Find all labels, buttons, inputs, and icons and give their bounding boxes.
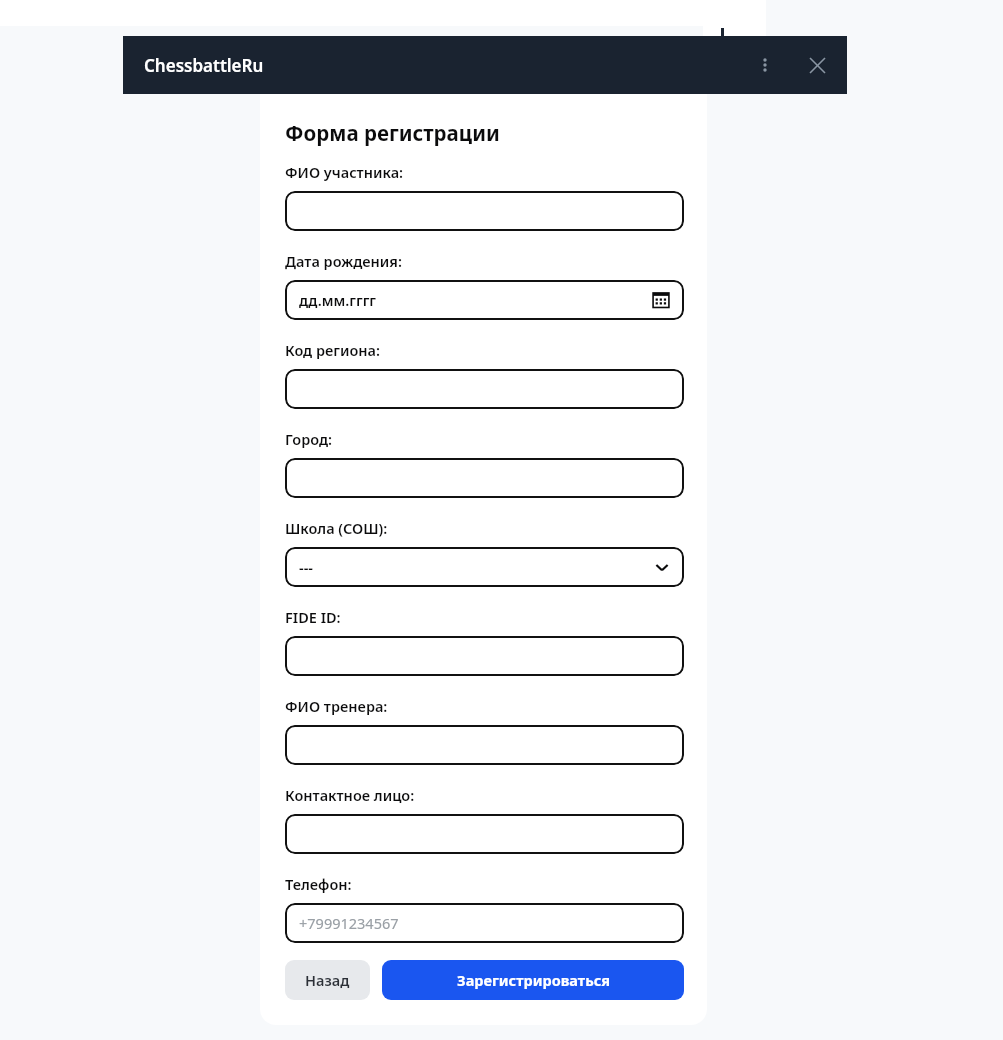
button[interactable]: Expand school list	[652, 557, 672, 577]
button[interactable]: дд.мм.гггг	[285, 280, 684, 320]
staticText: Дата рождения:	[285, 251, 402, 271]
staticText: ---	[299, 557, 313, 577]
staticText: дд.мм.гггг	[299, 290, 376, 310]
button[interactable]: Close	[797, 45, 837, 85]
button[interactable]: Зарегистрироваться	[382, 960, 684, 1000]
button[interactable]	[285, 725, 684, 765]
staticText: Школа (СОШ):	[285, 518, 388, 538]
button[interactable]	[285, 191, 684, 231]
staticText: Зарегистрироваться	[457, 970, 610, 990]
button[interactable]	[285, 636, 684, 676]
button[interactable]	[285, 369, 684, 409]
staticText: FIDE ID:	[285, 607, 341, 627]
staticText: Город:	[285, 429, 333, 449]
button[interactable]: ---	[285, 547, 684, 587]
staticText: ChessbattleRu	[144, 54, 264, 77]
staticText: Контактное лицо:	[285, 785, 415, 805]
button[interactable]: Назад	[285, 960, 370, 1000]
staticText: Телефон:	[285, 874, 352, 894]
button[interactable]: More options	[745, 45, 785, 85]
staticText: ФИО тренера:	[285, 696, 388, 716]
staticText: Код региона:	[285, 340, 381, 360]
staticText: Форма регистрации	[285, 119, 500, 147]
staticText: ФИО участника:	[285, 162, 404, 182]
button[interactable]	[285, 814, 684, 854]
button[interactable]: Open calendar	[650, 289, 672, 311]
button[interactable]	[285, 458, 684, 498]
staticText: +79991234567	[299, 913, 399, 933]
button[interactable]: +79991234567	[285, 903, 684, 943]
staticText: Назад	[305, 970, 350, 990]
